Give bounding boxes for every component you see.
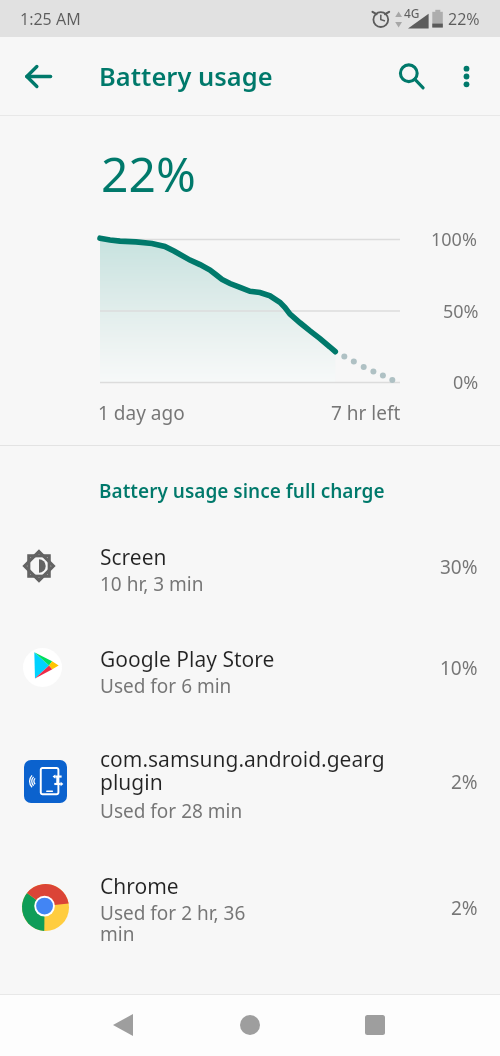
staticText: 2%: [451, 895, 478, 921]
button[interactable]: More options: [440, 50, 492, 102]
staticText: Battery usage since full charge: [99, 478, 385, 504]
staticText: 100%: [431, 227, 477, 252]
staticText: 1:25 AM: [20, 8, 81, 30]
staticText: Used for 2 hr, 36 min: [100, 900, 410, 947]
staticText: Screen: [100, 543, 410, 572]
button[interactable]: Recent apps: [344, 1001, 406, 1049]
staticText: 10 hr, 3 min: [100, 571, 410, 597]
button[interactable]: Google Play Store: [0, 619, 500, 719]
staticText: 50%: [443, 299, 479, 324]
staticText: 0%: [453, 370, 479, 395]
button[interactable]: com.samsung.android.gearg plugin: [0, 719, 500, 843]
button[interactable]: Search: [385, 50, 437, 102]
staticText: Used for 28 min: [100, 798, 410, 824]
button[interactable]: Screen: [0, 519, 500, 619]
button[interactable]: Back: [12, 50, 64, 102]
staticText: Battery usage: [99, 59, 273, 94]
staticText: Used for 6 min: [100, 673, 410, 699]
staticText: 22%: [448, 8, 480, 30]
staticText: 4G: [404, 5, 420, 21]
button[interactable]: Home: [219, 1001, 281, 1049]
button[interactable]: Back: [92, 1001, 154, 1049]
staticText: Google Play Store: [100, 645, 410, 674]
staticText: Chrome: [100, 872, 410, 901]
staticText: com.samsung.android.gearg plugin: [100, 745, 410, 796]
button[interactable]: Chrome: [0, 843, 500, 967]
staticText: 7 hr left: [331, 400, 401, 426]
staticText: 30%: [440, 554, 478, 580]
staticText: 10%: [440, 655, 478, 681]
staticText: 22%: [101, 141, 196, 206]
staticText: 2%: [451, 769, 478, 795]
staticText: 1 day ago: [98, 400, 185, 426]
